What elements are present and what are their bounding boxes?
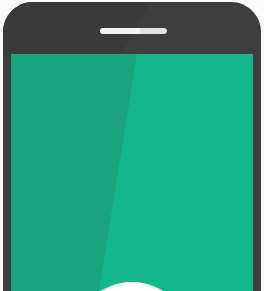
button[interactable]: Phone mockup [0,0,264,291]
